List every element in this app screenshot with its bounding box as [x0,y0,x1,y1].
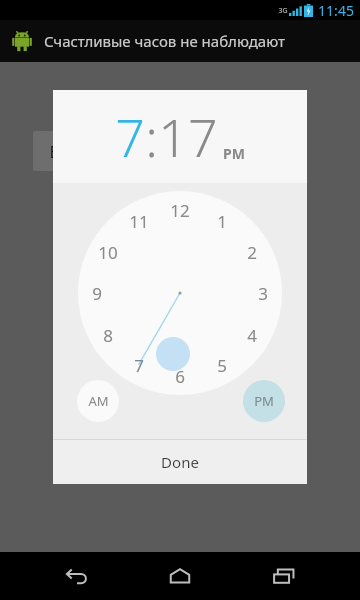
button[interactable]: 2 [235,239,269,265]
button[interactable]: 11 [122,208,156,234]
staticText: PM [223,144,245,163]
staticText: Done [161,452,199,472]
button[interactable]: Recents [257,556,311,596]
button[interactable]: B [33,131,77,171]
staticText: 5 [217,354,227,377]
staticText: 4 [247,324,257,347]
staticText: 2 [247,241,257,264]
staticText: 7 [115,101,145,172]
staticText: 3G [278,6,288,16]
staticText: 1 [217,210,227,233]
button[interactable]: 9 [80,280,114,306]
staticText: 11:45 [318,1,354,20]
staticText: 10 [98,241,118,264]
button[interactable]: 1 [205,208,239,234]
staticText: 3 [258,282,268,305]
button[interactable]: 12 [163,197,197,223]
button[interactable]: Back [50,556,104,596]
staticText: 7 [134,354,144,377]
button[interactable]: 8 [91,322,125,348]
button[interactable]: PM [243,380,285,422]
button[interactable]: PM [223,144,245,163]
button[interactable]: 6 [163,363,197,389]
button[interactable]: 5 [205,352,239,378]
staticText: PM [254,392,274,410]
staticText: Счастливые часов не наблюдают [44,31,285,51]
staticText: 12 [170,199,190,222]
button[interactable]: 7 [122,352,156,378]
button[interactable]: 10 [91,239,125,265]
button[interactable]: Home [153,556,207,596]
staticText: 8 [103,324,113,347]
staticText: AM [88,392,109,410]
staticText: 6 [175,365,185,388]
button[interactable]: 7 [115,101,145,172]
staticText: 9 [92,282,102,305]
button[interactable]: 4 [235,322,269,348]
button[interactable]: 3 [246,280,280,306]
staticText: : [145,101,158,172]
button[interactable]: Done [53,440,307,484]
button[interactable]: AM [77,380,119,422]
staticText: B [49,140,61,163]
button[interactable]: 17 [158,101,218,172]
staticText: 17 [158,101,218,172]
staticText: 11 [129,210,149,233]
